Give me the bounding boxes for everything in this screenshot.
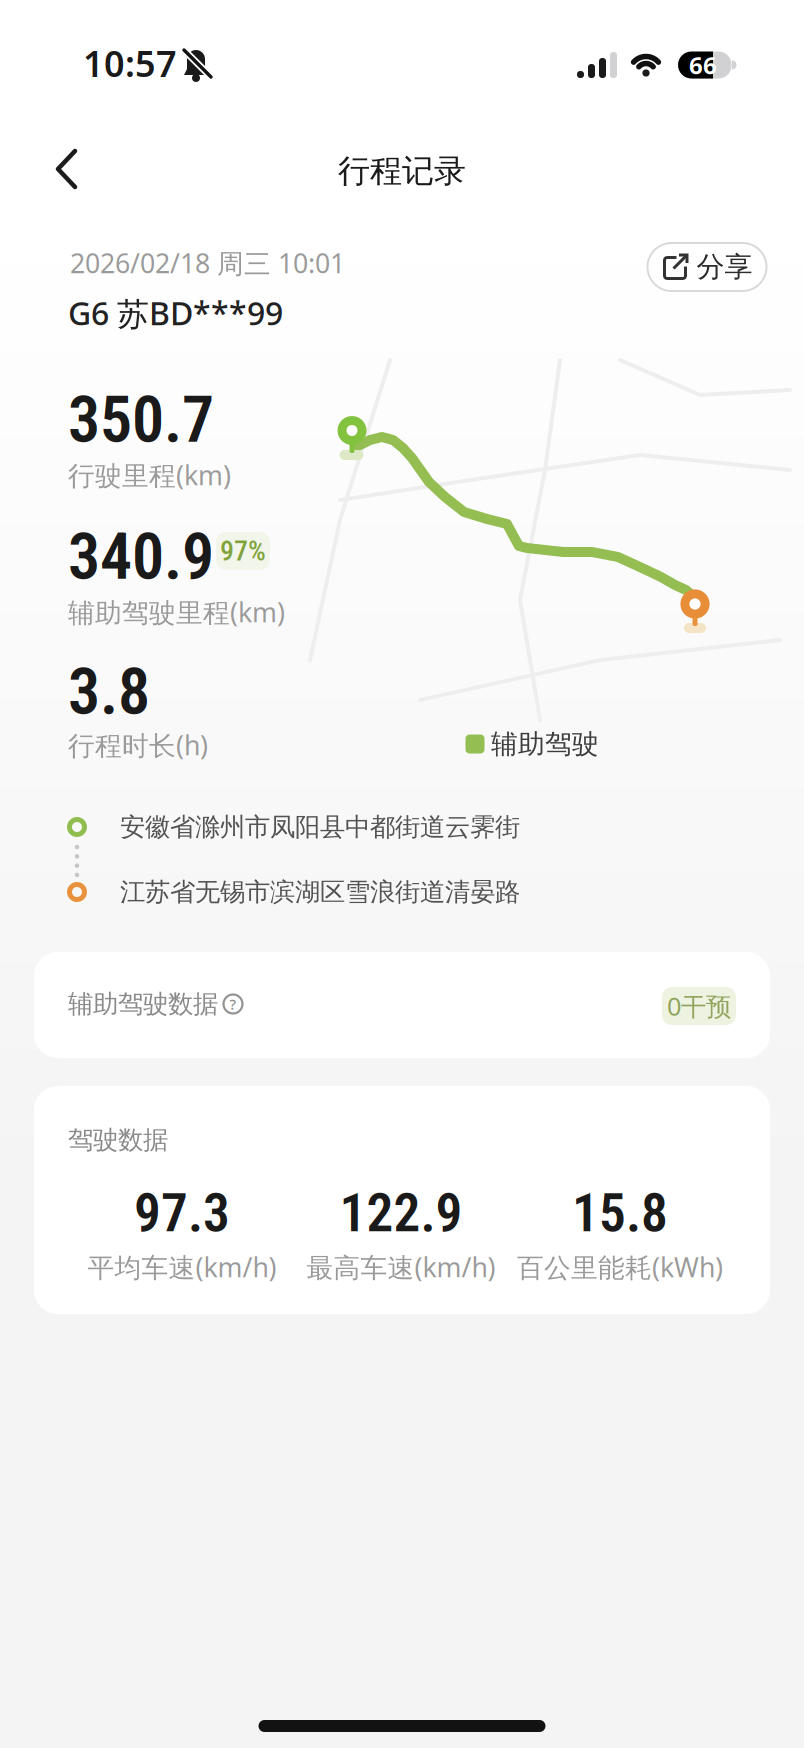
staticText: 最高车速(km/h) <box>306 1249 495 1285</box>
staticText: 辅助驾驶里程(km) <box>68 594 285 630</box>
staticText: 66 <box>689 49 717 81</box>
staticText: 0干预 <box>667 989 731 1023</box>
staticText: 分享 <box>696 250 752 284</box>
staticText: 平均车速(km/h) <box>87 1249 276 1285</box>
staticText: 97.3 <box>134 1182 230 1244</box>
button[interactable]: Help <box>222 993 244 1015</box>
staticText: 百公里能耗(kWh) <box>517 1249 723 1285</box>
staticText: 辅助驾驶 <box>491 728 599 760</box>
staticText: 江苏省无锡市滨湖区雪浪街道清晏路 <box>120 876 520 907</box>
staticText: 辅助驾驶数据 <box>68 988 218 1019</box>
staticText: 驾驶数据 <box>68 1124 168 1155</box>
staticText: 3.8 <box>68 654 150 729</box>
staticText: 行驶里程(km) <box>68 457 231 493</box>
staticText: ? <box>229 994 236 1014</box>
staticText: 行程记录 <box>338 151 466 191</box>
staticText: 2026/02/18 周三 10:01 <box>70 245 345 281</box>
staticText: 97% <box>220 535 266 567</box>
staticText: 安徽省滁州市凤阳县中都街道云霁街 <box>120 811 520 842</box>
staticText: G6 苏BD***99 <box>68 292 283 334</box>
staticText: 122.9 <box>339 1182 462 1244</box>
staticText: 行程时长(h) <box>68 727 208 763</box>
staticText: 350.7 <box>68 382 214 457</box>
staticText: 15.8 <box>572 1182 668 1244</box>
staticText: 340.9 <box>68 519 214 594</box>
button[interactable]: Back <box>48 147 92 191</box>
staticText: 10:57 <box>83 39 177 87</box>
button[interactable]: 分享 <box>646 242 767 292</box>
